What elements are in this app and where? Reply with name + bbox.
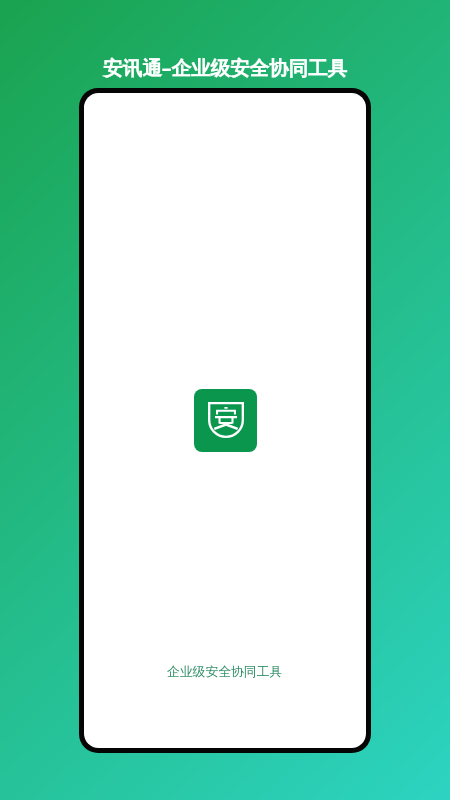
button[interactable]: 安讯通 应用图标 (194, 389, 257, 452)
staticText: 安讯通–企业级安全协同工具 (103, 54, 347, 81)
staticText: 企业级安全协同工具 (167, 664, 283, 680)
